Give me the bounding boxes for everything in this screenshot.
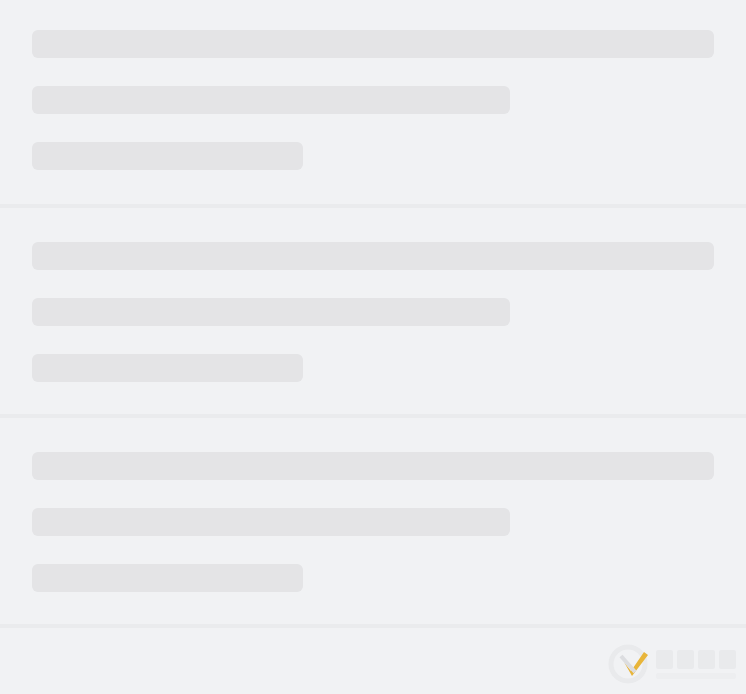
button[interactable] bbox=[0, 418, 746, 624]
button[interactable] bbox=[0, 0, 746, 204]
button[interactable] bbox=[0, 208, 746, 414]
